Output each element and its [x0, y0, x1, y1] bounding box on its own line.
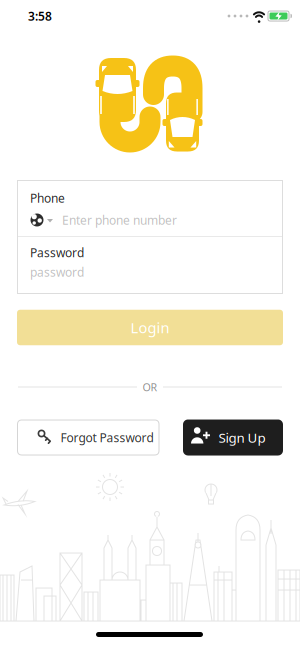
staticText: Password [30, 244, 84, 260]
staticText: Phone [30, 190, 65, 206]
staticText: Login [130, 318, 169, 337]
staticText: Forgot Password [60, 429, 153, 445]
staticText: Enter phone number [62, 212, 177, 228]
staticText: OR [142, 380, 157, 394]
button[interactable]: Sign Up [183, 419, 283, 455]
button[interactable]: Forgot Password [17, 419, 159, 455]
staticText: 3:58 [28, 8, 52, 24]
button[interactable]: Select country [27, 211, 55, 229]
staticText: Sign Up [218, 429, 265, 446]
staticText: password [30, 264, 84, 280]
button[interactable]: Login [17, 310, 283, 345]
